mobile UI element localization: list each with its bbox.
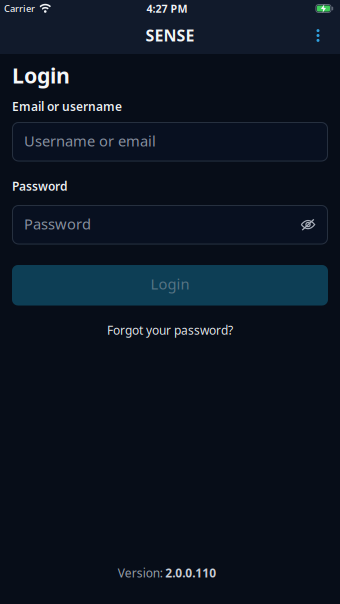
button[interactable]: Username or email — [12, 122, 328, 161]
staticText: Version: — [118, 565, 163, 581]
staticText: Login — [150, 274, 189, 293]
button[interactable]: More options — [308, 23, 328, 47]
staticText: SENSE — [145, 25, 194, 46]
staticText: Login — [12, 61, 70, 89]
button[interactable]: Login — [12, 265, 328, 305]
staticText: 2.0.0.110 — [165, 565, 216, 581]
button[interactable]: Forgot your password? — [0, 322, 340, 338]
staticText: Password — [12, 178, 68, 194]
staticText: Password — [24, 214, 91, 233]
staticText: Forgot your password? — [107, 322, 233, 338]
staticText: Email or username — [12, 98, 122, 114]
staticText: Carrier — [4, 2, 35, 15]
staticText: 4:27 PM — [146, 1, 187, 16]
button[interactable]: Show password — [298, 217, 317, 233]
staticText: Username or email — [24, 131, 156, 150]
button[interactable]: Password — [12, 205, 328, 244]
